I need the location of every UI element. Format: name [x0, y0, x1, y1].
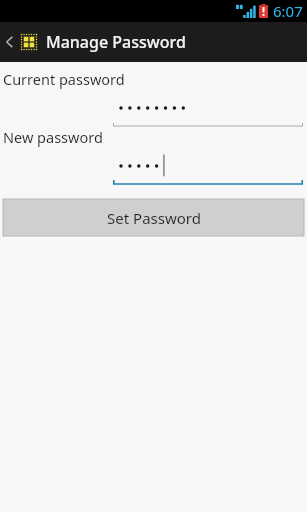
staticText: 6:07	[273, 1, 303, 21]
staticText: Manage Password	[46, 31, 186, 53]
button[interactable]: Set Password	[3, 199, 304, 236]
button[interactable]: Current password	[113, 93, 303, 127]
other: Battery low	[259, 4, 268, 18]
other: 3G signal strength	[236, 4, 254, 18]
button[interactable]: Navigate up	[0, 31, 307, 53]
staticText: New password	[3, 127, 103, 147]
staticText: Current password	[3, 69, 125, 89]
button[interactable]: New password	[113, 151, 303, 185]
other: Navigate up	[3, 32, 15, 52]
staticText: Set Password	[107, 208, 201, 228]
